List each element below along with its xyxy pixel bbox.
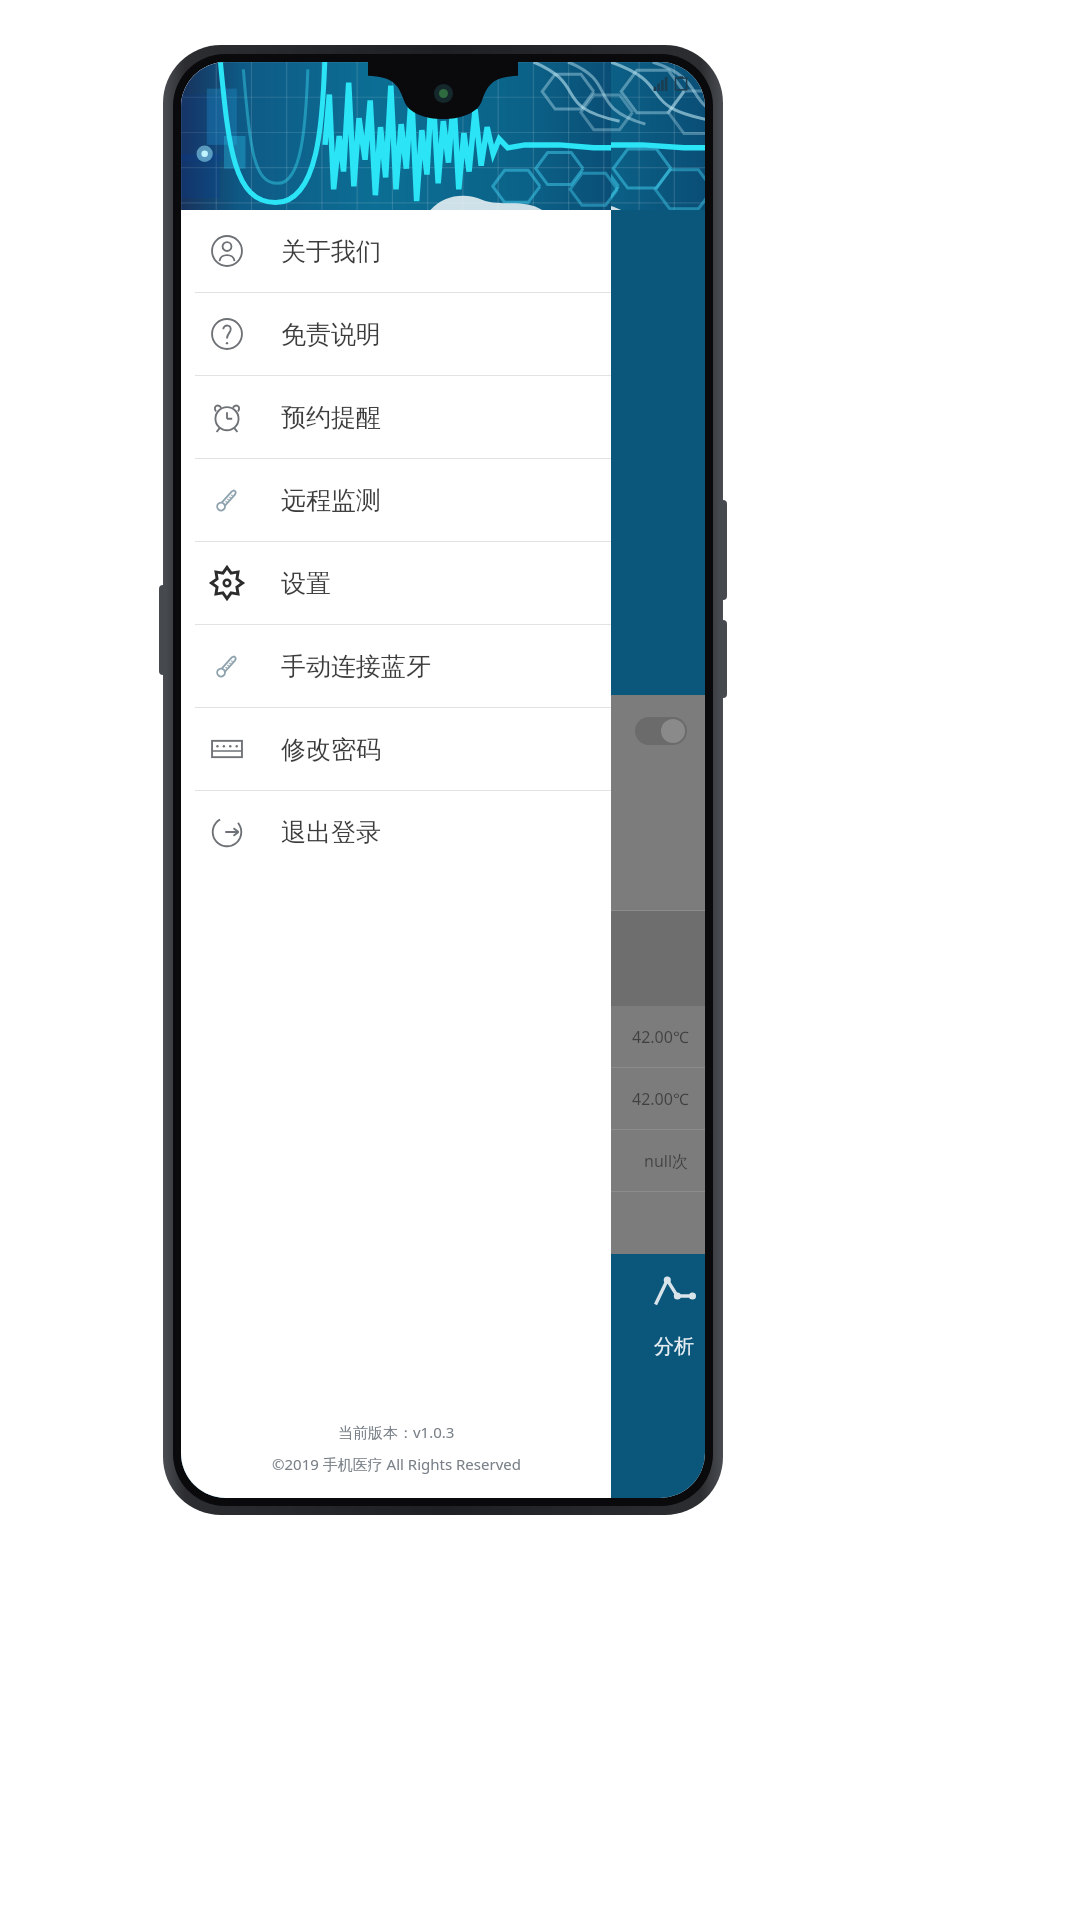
staticText: 预约提醒 [281, 402, 381, 433]
staticText: 修改密码 [281, 734, 381, 765]
button[interactable]: 远程监测 [181, 459, 611, 541]
button[interactable]: 预约提醒 [181, 376, 611, 458]
staticText: 42.00℃ [632, 1088, 689, 1110]
button[interactable]: 手动连接蓝牙 [181, 625, 611, 707]
staticText: 42.00℃ [632, 1026, 689, 1048]
staticText: 关于我们 [281, 236, 381, 267]
staticText: 退出登录 [281, 817, 381, 848]
staticText: 当前版本：v1.0.3 [338, 1422, 455, 1442]
staticText: ©2019 手机医疗 All Rights Reserved [272, 1454, 521, 1474]
staticText: 手动连接蓝牙 [281, 651, 431, 682]
staticText: 远程监测 [281, 485, 381, 516]
button[interactable]: 退出登录 [181, 791, 611, 873]
button[interactable]: 设置 [181, 542, 611, 624]
button[interactable]: 修改密码 [181, 708, 611, 790]
button[interactable]: 免责说明 [181, 293, 611, 375]
staticText: 分析 [654, 1334, 694, 1359]
staticText: 免责说明 [281, 319, 381, 350]
staticText: null次 [644, 1150, 689, 1172]
staticText: 设置 [281, 568, 331, 599]
button[interactable]: 关于我们 [181, 210, 611, 292]
